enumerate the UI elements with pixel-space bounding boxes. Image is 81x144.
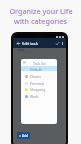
button[interactable]: Shopping — [21, 86, 57, 93]
button[interactable]: Work — [21, 93, 57, 100]
staticText: Shopping — [30, 87, 46, 92]
staticText: Default — [30, 67, 42, 72]
staticText: with categories — [14, 16, 67, 26]
staticText: Personal — [30, 81, 44, 86]
button[interactable]: Personal — [21, 80, 57, 87]
button[interactable]: Save — [55, 41, 60, 46]
staticText: Task list — [33, 61, 46, 66]
button[interactable]: Default — [21, 66, 57, 73]
button[interactable] — [21, 66, 57, 71]
staticText: Add — [22, 134, 28, 138]
staticText: Chores — [30, 74, 42, 79]
staticText: Edit task — [22, 41, 38, 46]
staticText: Organize your Life — [9, 6, 73, 16]
button[interactable]: Chores — [21, 73, 57, 80]
button[interactable]: Add — [17, 132, 30, 139]
button[interactable]: Back — [16, 41, 21, 46]
staticText: Work — [30, 94, 39, 99]
button[interactable]: More options — [60, 41, 64, 46]
